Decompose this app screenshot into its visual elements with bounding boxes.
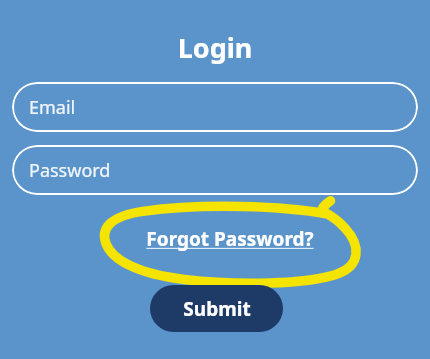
staticText: Password	[29, 158, 111, 183]
staticText: Forgot Password?	[146, 226, 314, 252]
staticText: Email	[29, 95, 76, 120]
button[interactable]: Email	[12, 82, 418, 132]
button[interactable]: Password	[12, 145, 418, 195]
button[interactable]: Forgot Password?	[139, 226, 321, 252]
button[interactable]: Submit	[150, 285, 283, 332]
staticText: Submit	[183, 296, 251, 322]
staticText: Login	[0, 29, 430, 359]
